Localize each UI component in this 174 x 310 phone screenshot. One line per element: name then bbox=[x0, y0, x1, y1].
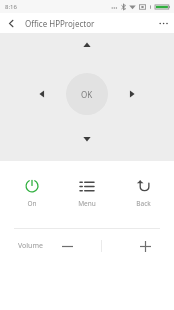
staticText: Back bbox=[136, 199, 151, 208]
button[interactable]: Right bbox=[122, 81, 142, 107]
button[interactable]: Left bbox=[32, 81, 52, 107]
button[interactable]: OK bbox=[66, 73, 108, 115]
staticText: Office HPProjector bbox=[25, 18, 95, 29]
button[interactable]: On bbox=[8, 175, 56, 210]
staticText: On bbox=[27, 199, 37, 208]
button[interactable]: Volume up bbox=[128, 229, 162, 263]
button[interactable]: Up bbox=[74, 35, 100, 55]
button[interactable]: Back bbox=[119, 175, 167, 210]
button[interactable]: Volume down bbox=[50, 229, 84, 263]
staticText: Volume bbox=[18, 241, 43, 251]
button[interactable]: Down bbox=[74, 129, 100, 149]
button[interactable]: Menu bbox=[63, 175, 111, 210]
staticText: 8:16 bbox=[5, 3, 17, 11]
staticText: Menu bbox=[78, 199, 96, 208]
button[interactable]: More options bbox=[154, 13, 174, 33]
button[interactable]: Back bbox=[2, 13, 20, 33]
staticText: OK bbox=[81, 89, 93, 100]
